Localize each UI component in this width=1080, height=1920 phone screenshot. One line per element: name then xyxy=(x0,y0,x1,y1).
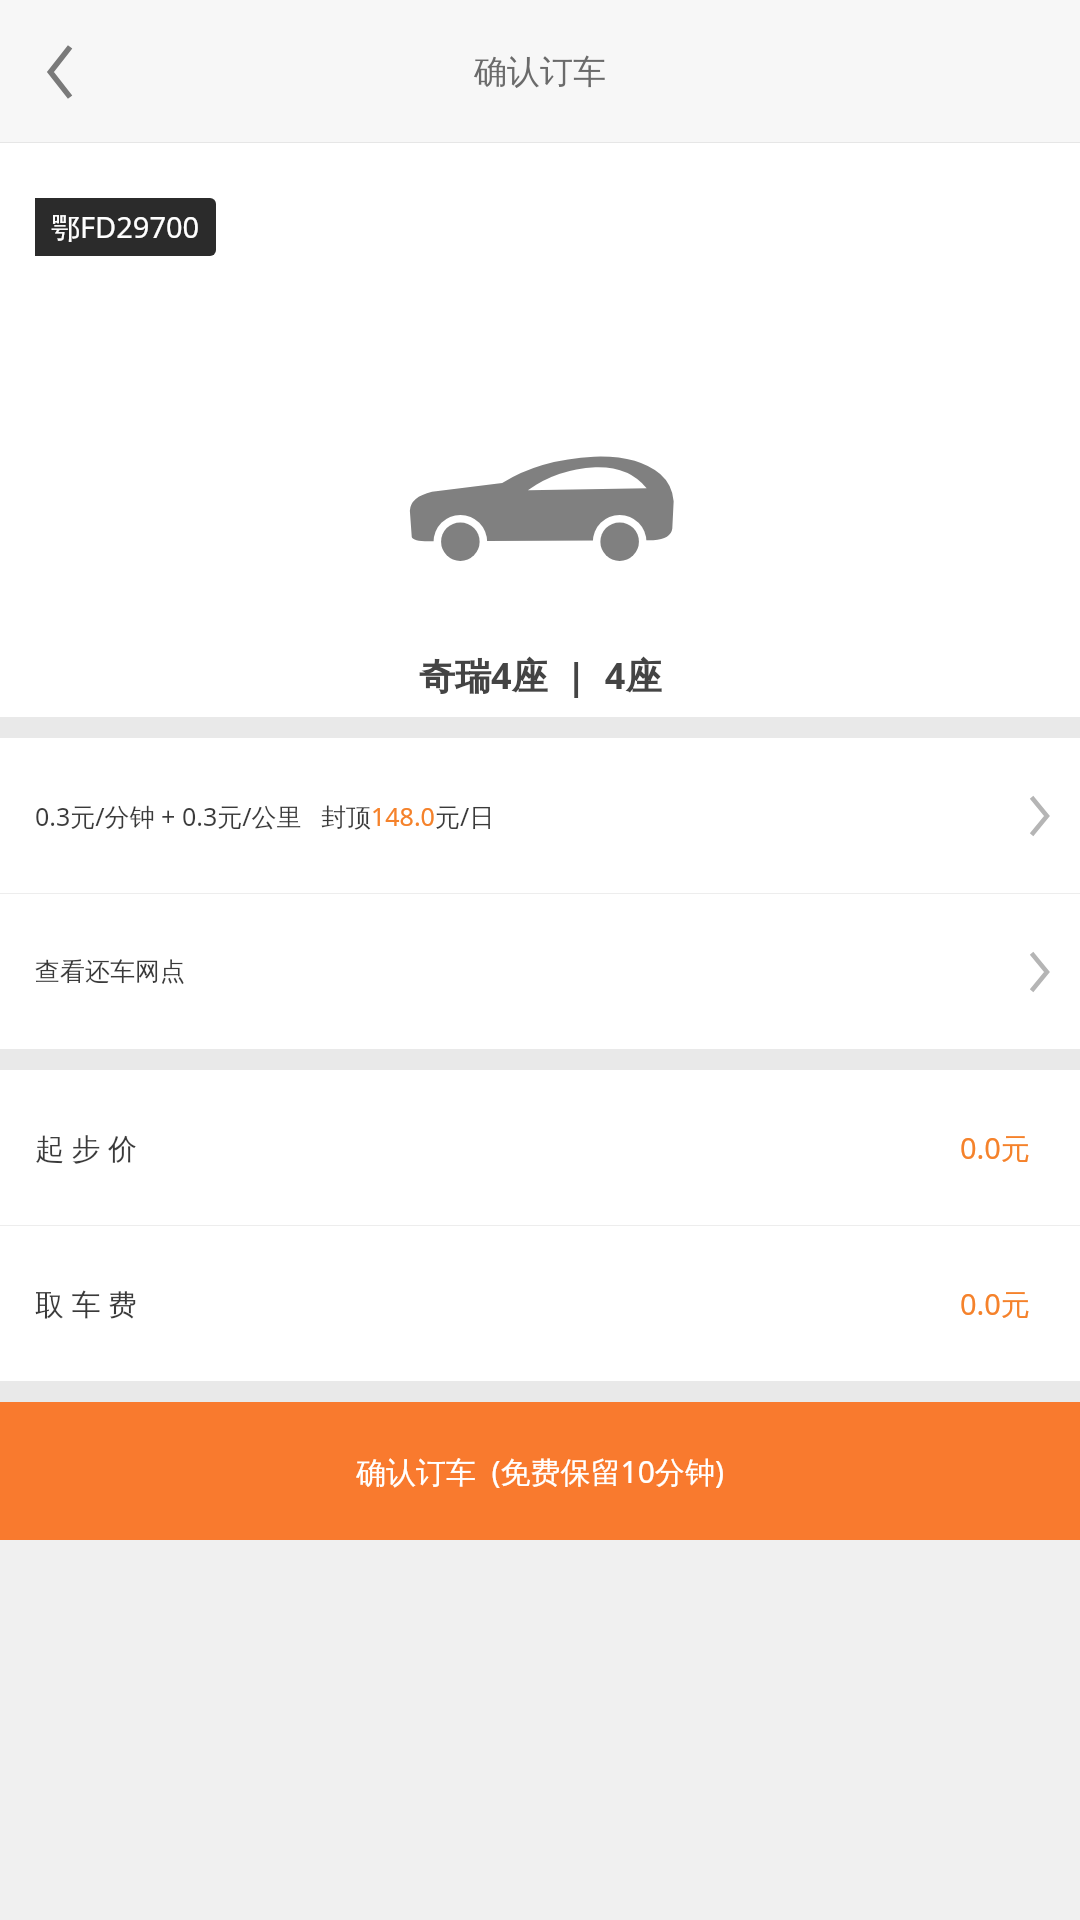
button[interactable]: 0.3元/分钟 + 0.3元/公里 封顶148.0元/日 xyxy=(0,738,1080,893)
staticText: 奇瑞4座 | 4座 xyxy=(419,651,662,700)
button[interactable]: 取 车 费 xyxy=(0,1226,1080,1381)
staticText: 取 车 费 xyxy=(35,1284,138,1324)
button[interactable]: 确认订车 (免费保留10分钟) xyxy=(0,1402,1080,1540)
staticText: 确认订车 (免费保留10分钟) xyxy=(356,1451,724,1492)
staticText: 查看还车网点 xyxy=(35,956,185,987)
staticText: 鄂FD29700 xyxy=(51,207,200,247)
staticText: 确认订车 xyxy=(474,51,606,93)
staticText: 起 步 价 xyxy=(35,1128,138,1168)
button[interactable]: 查看还车网点 xyxy=(0,894,1080,1049)
staticText: 0.0元 xyxy=(960,1284,1030,1324)
staticText: 0.3元/分钟 + 0.3元/公里 封顶148.0元/日 xyxy=(35,799,495,833)
button[interactable]: 起 步 价 xyxy=(0,1070,1080,1225)
staticText: 0.0元 xyxy=(960,1128,1030,1168)
staticText: 续航 161.0KM | 距离381.4公里 xyxy=(316,730,764,774)
button[interactable]: Back xyxy=(0,0,120,143)
